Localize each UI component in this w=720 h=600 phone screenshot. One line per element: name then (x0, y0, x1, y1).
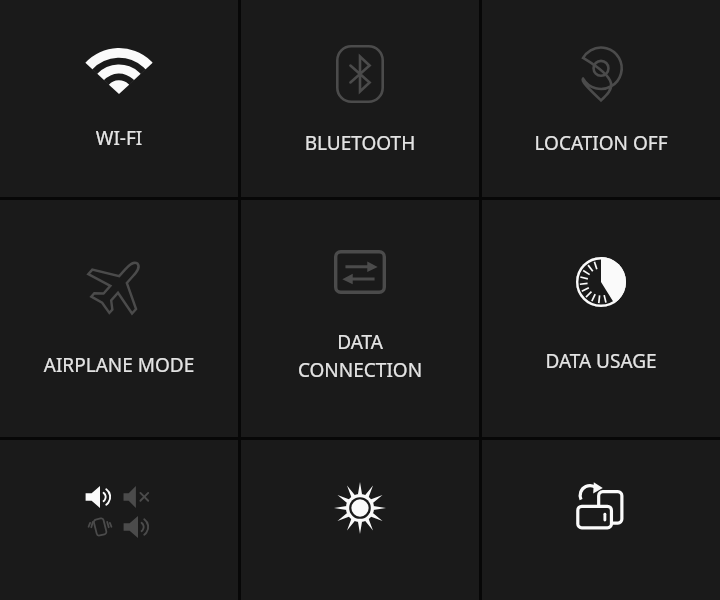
staticText: DATA CONNECTION (245, 329, 475, 383)
button[interactable]: Bluetooth (241, 0, 479, 197)
button[interactable]: Data connection (241, 200, 479, 437)
staticText: AIRPLANE MODE (4, 352, 234, 378)
button[interactable]: Auto rotate (482, 440, 720, 600)
staticText: LOCATION OFF (486, 130, 716, 156)
button[interactable]: Location off (482, 0, 720, 197)
button[interactable]: Airplane mode (0, 200, 238, 437)
staticText: BLUETOOTH (245, 130, 475, 156)
staticText: WI-FI (4, 125, 234, 151)
button[interactable]: Ringer mode (0, 440, 238, 600)
button[interactable]: Brightness (241, 440, 479, 600)
button[interactable]: Wi-Fi (0, 0, 238, 197)
staticText: DATA USAGE (486, 348, 716, 374)
button[interactable]: Data usage (482, 200, 720, 437)
